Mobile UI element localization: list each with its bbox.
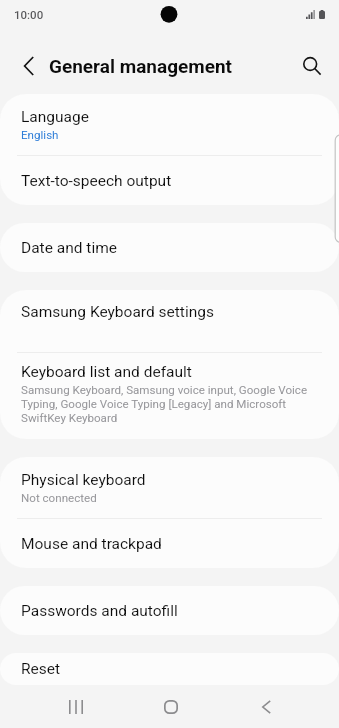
- staticText: Keyboard list and default: [21, 363, 192, 381]
- button[interactable]: Physical keyboard: [0, 457, 339, 518]
- staticText: Samsung Keyboard, Samsung voice input, G…: [21, 383, 319, 425]
- button[interactable]: Text-to-speech output: [0, 156, 339, 205]
- staticText: Reset: [21, 660, 61, 678]
- button[interactable]: Keyboard list and default: [0, 353, 339, 439]
- staticText: Date and time: [21, 239, 117, 257]
- button[interactable]: Navigate up: [5, 42, 53, 90]
- staticText: General management: [49, 55, 233, 77]
- button[interactable]: Home: [138, 686, 204, 728]
- staticText: Mouse and trackpad: [21, 535, 162, 553]
- staticText: Language: [21, 108, 89, 126]
- button[interactable]: Mouse and trackpad: [0, 519, 339, 568]
- button[interactable]: Date and time: [0, 223, 339, 272]
- staticText: Physical keyboard: [21, 471, 146, 489]
- button[interactable]: Search: [288, 42, 336, 90]
- button[interactable]: Samsung Keyboard settings: [0, 290, 339, 352]
- button[interactable]: Back: [234, 686, 298, 728]
- button[interactable]: Reset: [0, 653, 339, 685]
- staticText: 10:00: [14, 8, 44, 21]
- button[interactable]: Language: [0, 94, 339, 155]
- staticText: Passwords and autofill: [21, 602, 178, 620]
- button[interactable]: Recent apps: [43, 686, 108, 728]
- staticText: Text-to-speech output: [21, 172, 172, 190]
- staticText: Not connected: [21, 491, 97, 505]
- staticText: English: [21, 128, 59, 142]
- button[interactable]: Passwords and autofill: [0, 586, 339, 635]
- staticText: Samsung Keyboard settings: [21, 303, 214, 321]
